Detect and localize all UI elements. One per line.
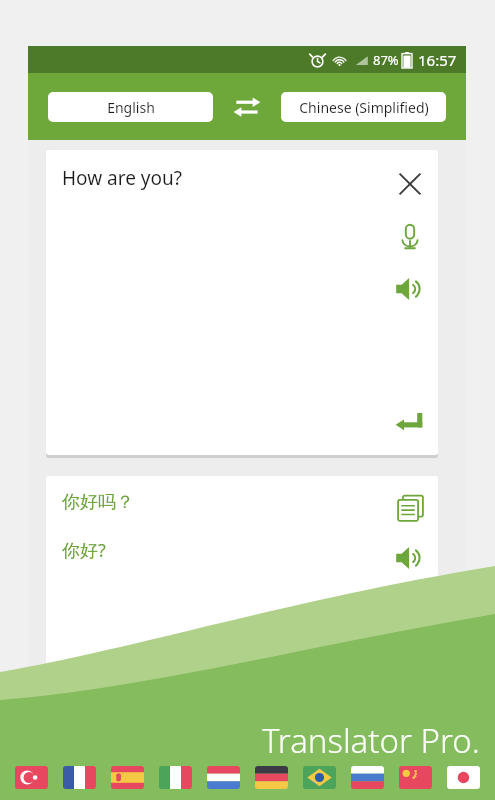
button[interactable]: Share translation <box>386 586 434 634</box>
button[interactable]: Russian <box>343 760 391 794</box>
staticText: 你好吗？ <box>62 491 134 514</box>
staticText: How are you? <box>62 165 183 191</box>
button[interactable]: Chinese <box>391 760 439 794</box>
button[interactable]: Italian <box>151 760 199 794</box>
button[interactable]: Chinese (Simplified) <box>281 92 446 122</box>
button[interactable]: Clear text <box>386 160 434 208</box>
button[interactable]: Dutch <box>199 760 247 794</box>
button[interactable]: Turkish <box>8 760 55 794</box>
staticText: English <box>107 98 155 117</box>
button[interactable]: German <box>247 760 295 794</box>
button[interactable]: English <box>48 92 213 122</box>
button[interactable]: Speak translation <box>386 534 434 582</box>
staticText: 16:57 <box>418 50 457 70</box>
button[interactable]: Translate <box>386 398 434 446</box>
button[interactable]: Portuguese <box>295 760 343 794</box>
staticText: 87% <box>373 51 399 69</box>
button[interactable]: 你好吗？ <box>46 476 438 726</box>
button[interactable]: How are you? <box>46 150 438 455</box>
staticText: 你好? <box>62 538 106 563</box>
button[interactable]: Japanese <box>439 760 487 794</box>
staticText: Translator Pro. <box>262 718 480 763</box>
button[interactable]: Copy translation <box>386 484 434 532</box>
button[interactable]: Speak source text <box>386 265 434 313</box>
staticText: Chinese (Simplified) <box>299 98 429 117</box>
button[interactable]: French <box>55 760 103 794</box>
button[interactable]: Voice input <box>386 213 434 261</box>
button[interactable]: Spanish <box>103 760 151 794</box>
button[interactable]: Swap languages <box>227 87 267 127</box>
